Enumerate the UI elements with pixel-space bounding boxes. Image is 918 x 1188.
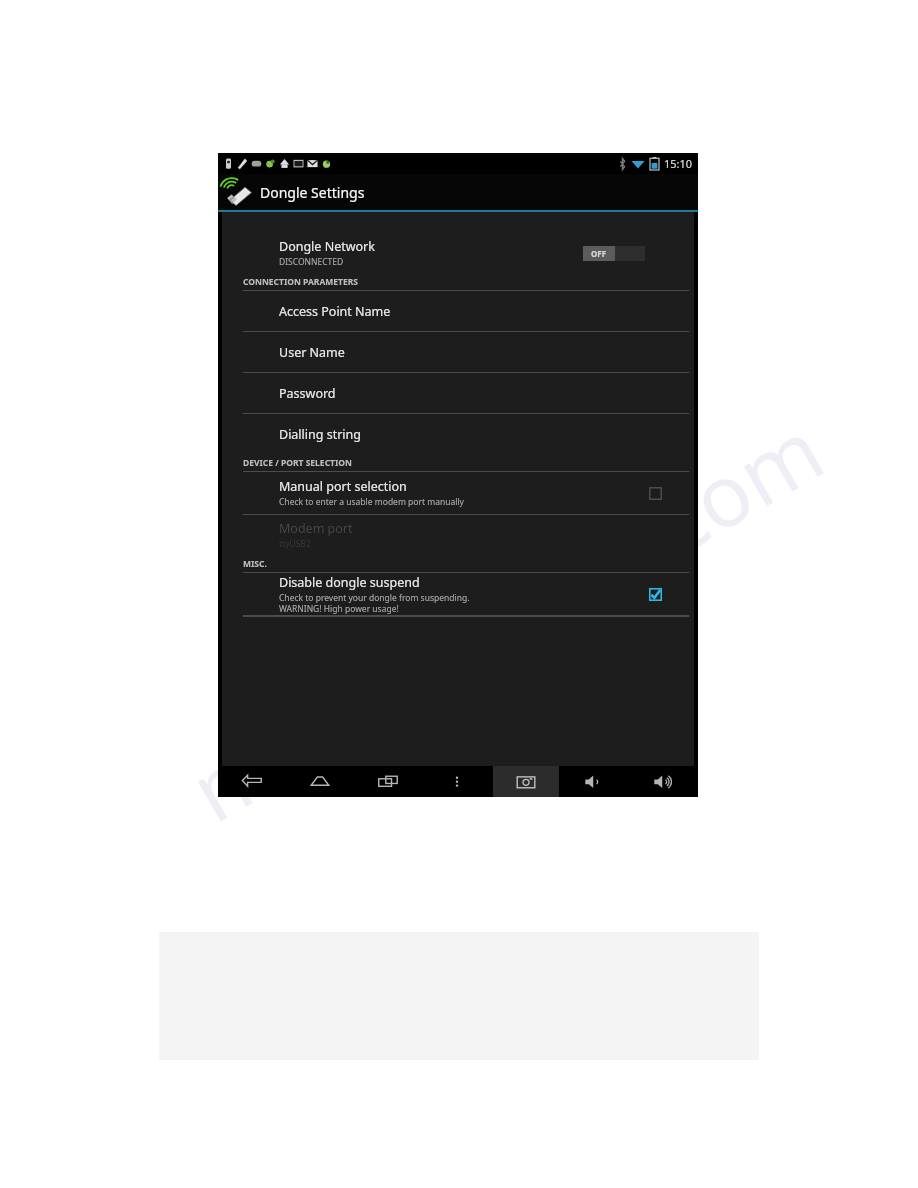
staticText: 15:10 xyxy=(664,156,693,171)
staticText: Check to enter a usable modem port manua… xyxy=(279,496,464,508)
button[interactable]: Manual port selection xyxy=(644,482,666,504)
staticText: DISCONNECTED xyxy=(279,256,344,268)
staticText: Dialling string xyxy=(279,426,362,443)
button[interactable]: Volume down xyxy=(560,766,629,797)
button[interactable]: Dialling string xyxy=(222,414,694,454)
staticText: Check to prevent your dongle from suspen… xyxy=(279,592,470,614)
staticText: CONNECTION PARAMETERS xyxy=(243,276,358,288)
staticText: manualshive.com xyxy=(168,390,843,847)
button[interactable]: Back xyxy=(218,766,286,797)
staticText: Password xyxy=(279,385,336,402)
button[interactable]: Access Point Name xyxy=(222,291,694,331)
button[interactable]: Home xyxy=(286,766,354,797)
button[interactable]: More options xyxy=(422,766,491,797)
staticText: Access Point Name xyxy=(279,303,391,320)
button[interactable]: Dongle xyxy=(218,174,698,210)
other: Dongle xyxy=(222,177,254,207)
staticText: Dongle Network xyxy=(279,238,375,255)
button[interactable]: Disable dongle suspend xyxy=(222,573,694,615)
button[interactable]: OFF xyxy=(583,246,645,261)
button[interactable]: User Name xyxy=(222,332,694,372)
button[interactable]: Disable dongle suspend xyxy=(644,583,666,605)
button[interactable]: Password xyxy=(222,373,694,413)
staticText: Dongle Settings xyxy=(260,183,365,202)
staticText: OFF xyxy=(591,248,607,259)
staticText: Manual port selection xyxy=(279,478,407,495)
staticText: User Name xyxy=(279,344,345,361)
button[interactable]: Volume up xyxy=(629,766,698,797)
button[interactable]: Dongle Network xyxy=(222,233,694,273)
staticText: DEVICE / PORT SELECTION xyxy=(243,457,352,469)
button[interactable]: Screenshot xyxy=(493,766,559,797)
button[interactable]: Manual port selection xyxy=(222,472,694,514)
staticText: Disable dongle suspend xyxy=(279,574,420,591)
button[interactable]: Recents xyxy=(354,766,422,797)
staticText: MISC. xyxy=(243,558,267,570)
staticText: ttyUSB2 xyxy=(279,538,311,550)
staticText: Modem port xyxy=(279,520,353,537)
